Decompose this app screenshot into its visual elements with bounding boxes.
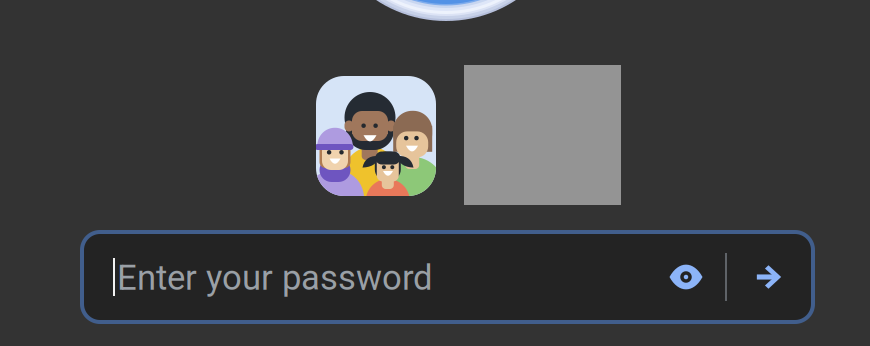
staticText: Enter your password [117, 258, 433, 298]
button[interactable]: Show password [651, 242, 721, 312]
button[interactable]: Submit [731, 242, 807, 312]
